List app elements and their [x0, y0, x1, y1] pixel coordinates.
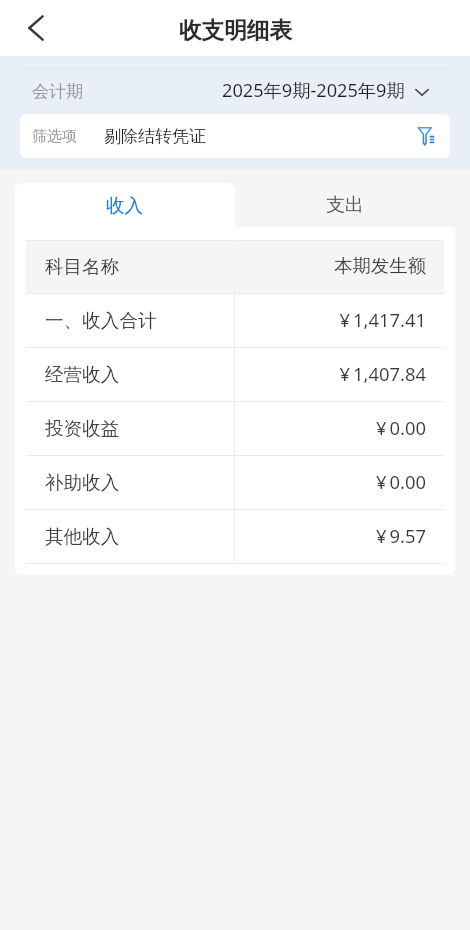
staticText: ¥ 9.57: [375, 523, 426, 548]
button[interactable]: Filter: [414, 124, 436, 146]
staticText: ¥ 0.00: [375, 415, 426, 440]
staticText: 补助收入: [45, 471, 120, 494]
staticText: 科目名称: [45, 255, 120, 278]
button[interactable]: 经营收入: [26, 348, 444, 402]
button[interactable]: 一、收入合计: [26, 294, 444, 348]
staticText: ¥ 0.00: [375, 469, 426, 494]
button[interactable]: 补助收入: [26, 456, 444, 510]
button[interactable]: Back: [0, 0, 56, 56]
staticText: 筛选项: [32, 127, 77, 146]
button[interactable]: 科目名称: [26, 240, 444, 294]
staticText: 其他收入: [45, 525, 120, 548]
staticText: ¥ 1,407.84: [339, 361, 426, 386]
staticText: ¥ 1,417.41: [339, 307, 426, 332]
staticText: 会计期: [32, 81, 83, 102]
staticText: 收支明细表: [179, 16, 292, 44]
staticText: 经营收入: [45, 363, 120, 386]
staticText: 支出: [326, 193, 364, 217]
staticText: 投资收益: [45, 417, 120, 440]
button[interactable]: 其他收入: [26, 510, 444, 564]
button[interactable]: 筛选项: [20, 114, 450, 158]
staticText: 一、收入合计: [45, 309, 157, 332]
button[interactable]: 收入: [15, 183, 235, 227]
staticText: 剔除结转凭证: [104, 126, 206, 147]
button[interactable]: 会计期: [0, 69, 470, 114]
button[interactable]: 支出: [235, 183, 455, 227]
staticText: 2025年9期-2025年9期: [222, 78, 405, 103]
staticText: 本期发生额: [334, 254, 426, 277]
button[interactable]: 投资收益: [26, 402, 444, 456]
staticText: 收入: [106, 194, 144, 217]
